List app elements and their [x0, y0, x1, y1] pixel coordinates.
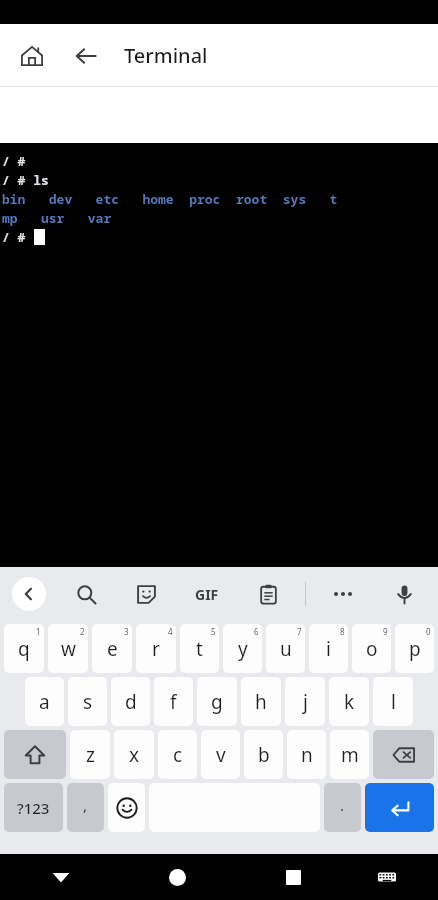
button[interactable]: Stickers [126, 574, 166, 614]
staticText: c [173, 742, 183, 768]
staticText: r [152, 636, 160, 662]
button[interactable]: w [48, 624, 88, 673]
staticText: 5 [211, 626, 216, 637]
staticText: mp usr var [2, 209, 112, 227]
button[interactable]: ?123 [4, 783, 63, 832]
button[interactable]: z [70, 730, 110, 779]
staticText: GIF [195, 585, 219, 604]
staticText: u [280, 636, 292, 662]
staticText: / # ls [2, 171, 49, 189]
button[interactable]: p [395, 624, 434, 673]
button[interactable]: Search [66, 574, 106, 614]
button[interactable]: Voice input [384, 574, 424, 614]
button[interactable]: Back [41, 857, 81, 897]
staticText: t [196, 636, 203, 662]
button[interactable]: Recent apps [273, 857, 313, 897]
staticText: 4 [168, 626, 173, 637]
staticText: 3 [124, 626, 129, 637]
button[interactable]: q [4, 624, 44, 673]
button[interactable]: Backspace [373, 730, 434, 779]
button[interactable]: n [287, 730, 326, 779]
staticText: f [170, 689, 177, 715]
button[interactable]: t [180, 624, 219, 673]
staticText: 7 [297, 626, 302, 637]
staticText: w [61, 636, 76, 662]
staticText: x [129, 742, 140, 768]
button[interactable]: Enter [365, 783, 434, 832]
staticText: v [216, 742, 226, 768]
button[interactable]: h [241, 677, 281, 726]
button[interactable]: j [285, 677, 325, 726]
button[interactable]: s [68, 677, 107, 726]
button[interactable]: More options [323, 574, 363, 614]
staticText: m [341, 742, 359, 768]
staticText: , [83, 795, 88, 815]
staticText: a [39, 689, 50, 715]
button[interactable]: d [111, 677, 150, 726]
staticText: 1 [36, 626, 41, 637]
button[interactable]: o [352, 624, 391, 673]
button[interactable]: Home [157, 857, 197, 897]
button[interactable]: Clipboard [248, 574, 288, 614]
staticText: j [303, 689, 308, 715]
staticText: 8 [340, 626, 345, 637]
staticText: . [340, 795, 345, 815]
button[interactable]: l [373, 677, 413, 726]
staticText: q [18, 636, 30, 662]
staticText: o [366, 636, 378, 662]
button[interactable]: Shift [4, 730, 66, 779]
staticText: z [86, 742, 95, 768]
button[interactable]: , [67, 783, 104, 832]
button[interactable]: . [324, 783, 361, 832]
button[interactable]: Back [68, 38, 104, 74]
staticText: k [344, 689, 355, 715]
button[interactable]: c [158, 730, 197, 779]
staticText: e [107, 636, 118, 662]
button[interactable]: Emoji [108, 783, 145, 832]
staticText: ?123 [17, 798, 50, 818]
staticText: bin dev etc home proc root sys t [2, 190, 338, 208]
button[interactable]: Close toolbar [12, 577, 46, 611]
button[interactable]: v [201, 730, 240, 779]
staticText: 6 [254, 626, 259, 637]
button[interactable]: g [197, 677, 237, 726]
button[interactable]: u [266, 624, 305, 673]
staticText: 9 [383, 626, 388, 637]
staticText: d [125, 689, 137, 715]
staticText: h [255, 689, 267, 715]
button[interactable]: a [25, 677, 64, 726]
staticText: b [258, 742, 270, 768]
button[interactable]: y [223, 624, 262, 673]
button[interactable]: m [330, 730, 369, 779]
staticText: 0 [426, 626, 431, 637]
staticText: s [83, 689, 93, 715]
staticText: i [326, 636, 331, 662]
staticText: / # [2, 152, 34, 170]
button[interactable]: Switch keyboard [370, 860, 404, 894]
button[interactable]: Home [14, 38, 50, 74]
button[interactable]: k [329, 677, 369, 726]
button[interactable]: f [154, 677, 193, 726]
button[interactable]: b [244, 730, 283, 779]
button[interactable]: GIF [187, 574, 227, 614]
staticText: g [211, 689, 223, 715]
staticText: / # [2, 228, 34, 246]
staticText: 2 [80, 626, 85, 637]
button[interactable]: i [309, 624, 348, 673]
staticText: l [391, 689, 396, 715]
staticText: p [409, 636, 421, 662]
button[interactable]: e [92, 624, 132, 673]
staticText: n [301, 742, 313, 768]
button[interactable]: r [136, 624, 176, 673]
button[interactable]: x [114, 730, 154, 779]
staticText: Terminal [124, 42, 208, 69]
staticText: y [238, 636, 248, 662]
